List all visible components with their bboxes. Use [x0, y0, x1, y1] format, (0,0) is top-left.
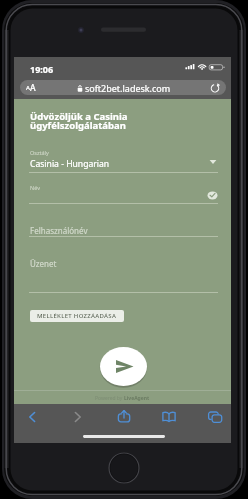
staticText: 19:06 — [30, 63, 54, 75]
staticText: LiveAgent — [124, 395, 150, 402]
staticText: Osztály — [30, 149, 49, 156]
button[interactable]: Forward — [67, 406, 89, 428]
staticText: A — [30, 82, 36, 94]
button[interactable]: Share — [113, 406, 135, 428]
button[interactable]: A — [20, 80, 226, 95]
button[interactable]: Send message — [99, 346, 148, 388]
staticText: Casinia - Hungarian — [30, 158, 110, 170]
staticText: MELLÉKLET HOZZÁADÁSA — [37, 312, 117, 320]
staticText: soft2bet.ladesk.com — [85, 82, 171, 94]
button[interactable]: Bookmarks — [158, 406, 180, 428]
staticText: Felhasználónév — [30, 225, 88, 236]
other: Reload page — [210, 83, 220, 93]
staticText: Üdvözöljük a Casinia ügyfélszolgálatában — [30, 110, 128, 132]
other: Field valid — [207, 191, 218, 200]
staticText: A — [26, 84, 30, 92]
staticText: Powered by — [95, 395, 124, 402]
staticText: Név — [30, 184, 40, 191]
button[interactable]: MELLÉKLET HOZZÁADÁSA — [30, 310, 124, 322]
button[interactable]: Tabs — [204, 406, 226, 428]
staticText: Üzenet — [30, 258, 57, 269]
button[interactable]: Back — [21, 406, 43, 428]
